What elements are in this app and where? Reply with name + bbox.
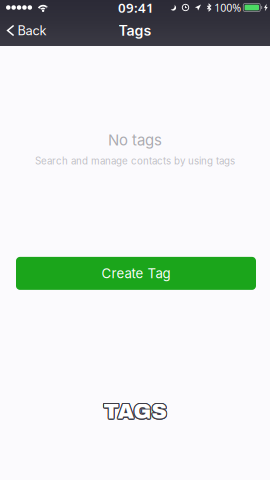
staticText: TAGS: [105, 400, 168, 423]
staticText: 09:41: [118, 0, 154, 16]
staticText: No tags: [108, 131, 162, 149]
staticText: TAGS: [104, 399, 167, 422]
staticText: TAGS: [102, 400, 165, 423]
staticText: Tags: [118, 22, 151, 39]
staticText: Search and manage contacts by using tags: [35, 155, 235, 167]
staticText: Back: [18, 23, 47, 38]
staticText: TAGS: [104, 399, 167, 422]
staticText: TAGS: [104, 400, 167, 424]
staticText: TAGS: [102, 400, 165, 424]
staticText: TAGS: [103, 400, 166, 423]
staticText: TAGS: [102, 399, 165, 422]
staticText: Create Tag: [101, 265, 170, 281]
staticText: 100%: [214, 0, 241, 15]
staticText: TAGS: [103, 399, 166, 422]
staticText: TAGS: [104, 401, 167, 424]
button[interactable]: Back: [0, 17, 47, 44]
staticText: TAGS: [103, 401, 166, 424]
staticText: TAGS: [103, 401, 166, 424]
button[interactable]: Create Tag: [16, 257, 256, 290]
staticText: TAGS: [103, 399, 166, 422]
